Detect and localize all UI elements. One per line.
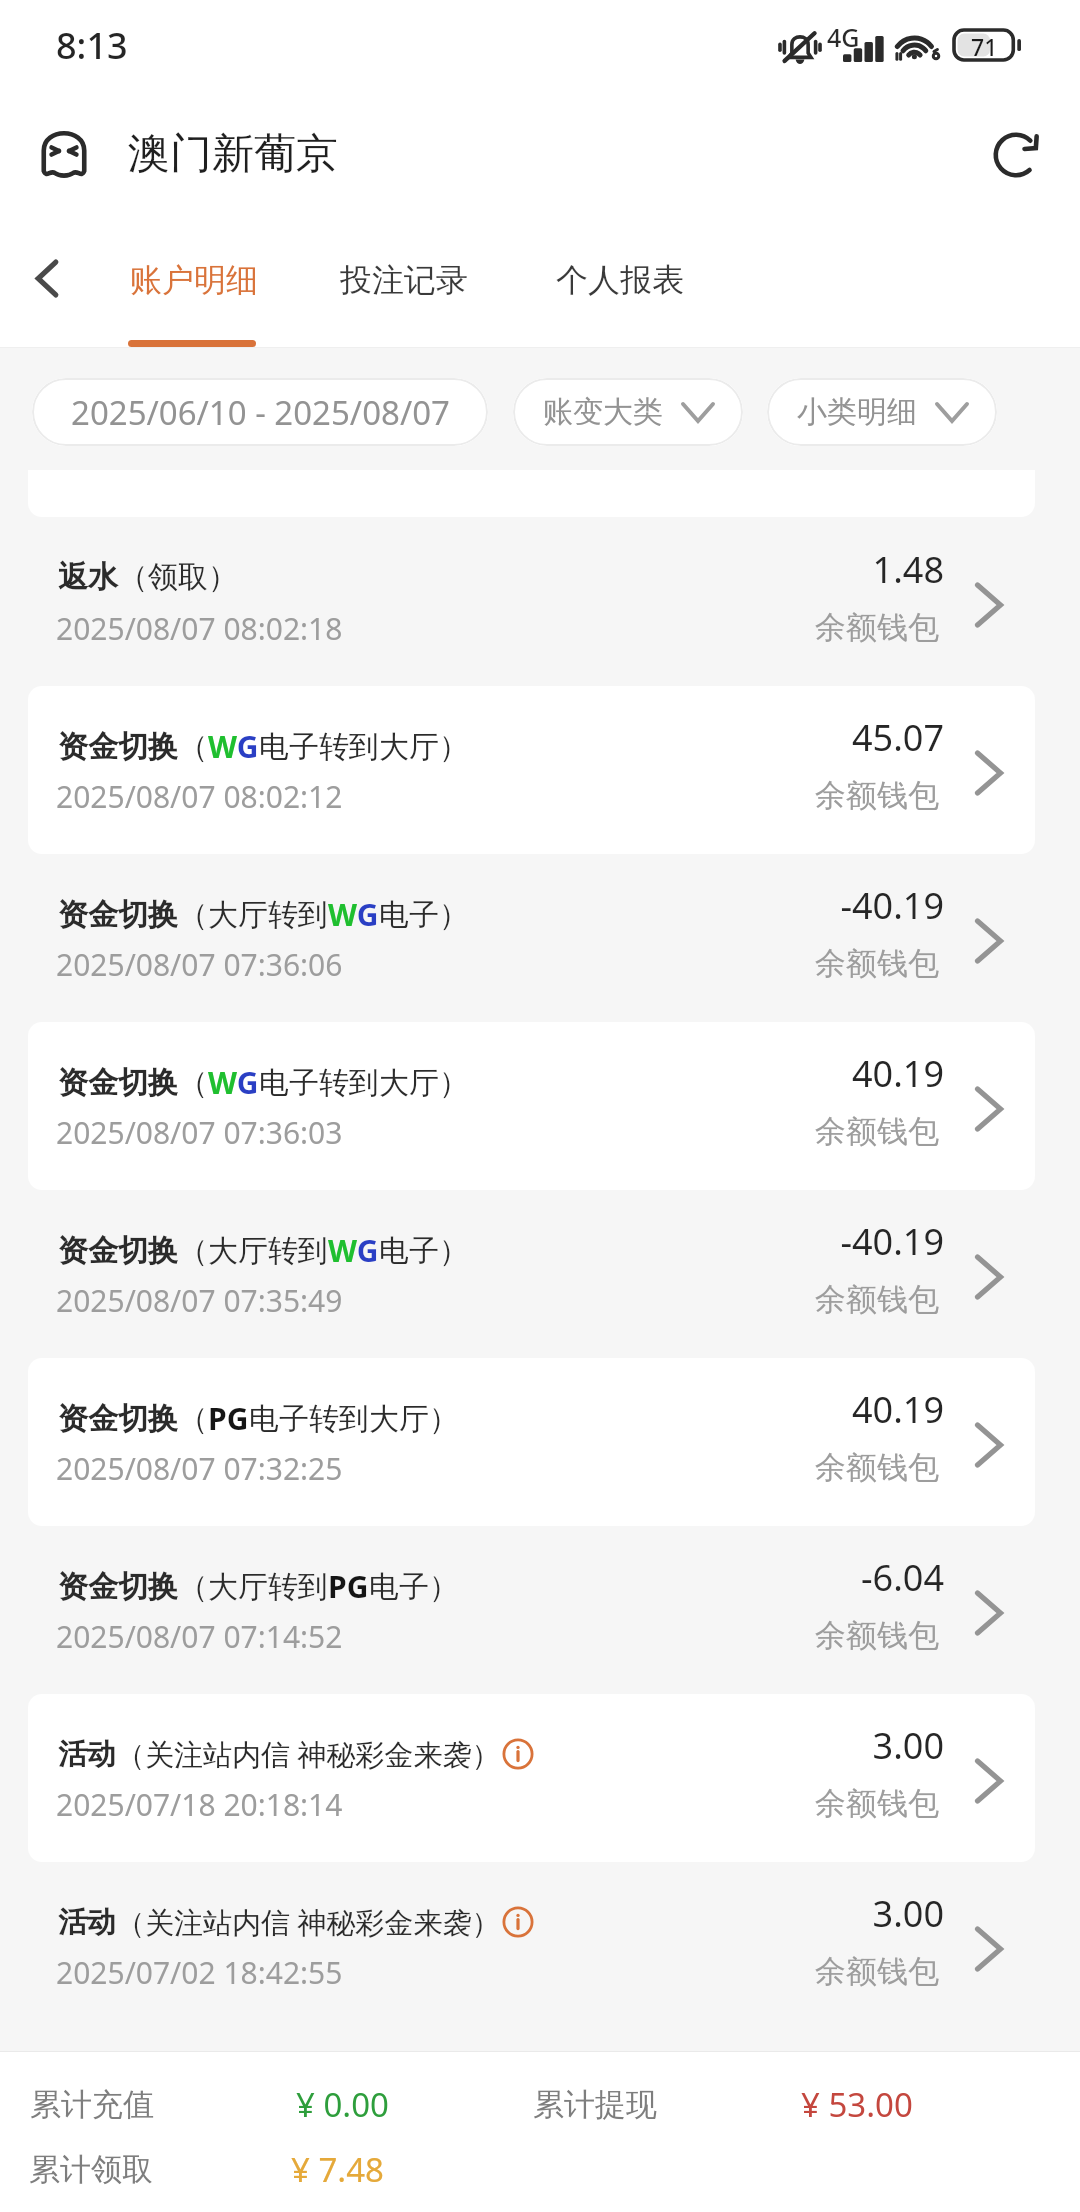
button[interactable]: 资金切换 xyxy=(0,1358,1080,1526)
staticText: WG xyxy=(208,726,259,767)
staticText: 2025/08/07 07:32:25 xyxy=(56,1448,343,1489)
staticText: （大厅转到 xyxy=(178,1568,328,1606)
staticText: 3.00 xyxy=(640,1721,944,1770)
staticText: 45.07 xyxy=(640,713,944,762)
staticText: 2025/08/07 07:36:03 xyxy=(56,1112,343,1153)
staticText: -40.19 xyxy=(640,1217,944,1266)
button[interactable]: 资金切换 xyxy=(0,854,1080,1022)
staticText: 余额钱包 xyxy=(640,1112,939,1151)
button[interactable]: 投注记录 xyxy=(318,240,490,324)
staticText: 资金切换 xyxy=(58,896,178,934)
staticText: 71 xyxy=(971,31,998,61)
staticText: （大厅转到 xyxy=(178,896,328,934)
staticText: 1.48 xyxy=(640,545,944,594)
staticText: 2025/08/07 08:02:18 xyxy=(56,608,343,649)
staticText: 2025/07/02 18:42:55 xyxy=(56,1952,343,1993)
staticText: 余额钱包 xyxy=(640,776,939,815)
staticText: 40.19 xyxy=(640,1049,944,1098)
staticText: 电子） xyxy=(379,1232,469,1270)
staticText: （大厅转到 xyxy=(178,1232,328,1270)
button[interactable]: 个人报表 xyxy=(534,240,706,324)
staticText: 2025/08/07 08:02:12 xyxy=(56,776,343,817)
button[interactable]: 资金切换 xyxy=(0,1190,1080,1358)
staticText: 电子） xyxy=(379,896,469,934)
staticText: 电子） xyxy=(369,1568,459,1606)
staticText: -40.19 xyxy=(640,881,944,930)
staticText: 2025/08/07 07:36:06 xyxy=(56,944,343,985)
staticText: ¥ 0.00 xyxy=(296,2082,389,2127)
staticText: ¥ 53.00 xyxy=(801,2082,913,2127)
staticText: 2025/07/18 20:18:14 xyxy=(56,1784,343,1825)
staticText: 8:13 xyxy=(56,21,128,70)
staticText: 小类明细 xyxy=(797,393,917,431)
staticText: 返水 xyxy=(58,558,118,596)
button[interactable]: 资金切换 xyxy=(0,686,1080,854)
button[interactable]: Back xyxy=(12,243,82,313)
staticText: -6.04 xyxy=(640,1553,944,1602)
staticText: 资金切换 xyxy=(58,1064,178,1102)
staticText: 余额钱包 xyxy=(640,1616,939,1655)
staticText: PG xyxy=(328,1566,369,1607)
staticText: 投注记录 xyxy=(340,260,468,300)
staticText: （ xyxy=(178,728,208,766)
staticText: 40.19 xyxy=(640,1385,944,1434)
button[interactable]: 2025/06/10 - 2025/08/07 xyxy=(32,378,488,446)
button[interactable]: 返水 xyxy=(0,518,1080,686)
staticText: WG xyxy=(328,894,379,935)
button[interactable]: 活动 xyxy=(0,1862,1080,2030)
staticText: 资金切换 xyxy=(58,728,178,766)
staticText: 3.00 xyxy=(640,1889,944,1938)
staticText: 余额钱包 xyxy=(640,608,939,647)
staticText: 余额钱包 xyxy=(640,1784,939,1823)
staticText: 资金切换 xyxy=(58,1568,178,1606)
button[interactable]: 活动 xyxy=(0,1694,1080,1862)
staticText: 资金切换 xyxy=(58,1232,178,1270)
staticText: 余额钱包 xyxy=(640,944,939,983)
staticText: 电子转到大厅） xyxy=(249,1400,459,1438)
staticText: WG xyxy=(328,1230,379,1271)
staticText: （关注站内信 神秘彩金来袭） xyxy=(116,1734,501,1774)
staticText: 累计领取 xyxy=(29,2150,153,2189)
staticText: 账变大类 xyxy=(543,393,663,431)
staticText: 澳门新葡京 xyxy=(128,128,338,181)
staticText: 2025/06/10 - 2025/08/07 xyxy=(71,390,450,435)
staticText: 4G xyxy=(827,20,860,54)
staticText: 余额钱包 xyxy=(640,1280,939,1319)
staticText: 2025/08/07 07:14:52 xyxy=(56,1616,343,1657)
staticText: 余额钱包 xyxy=(640,1952,939,1991)
staticText: 活动 xyxy=(58,1736,116,1773)
staticText: ¥ 7.48 xyxy=(291,2147,384,2192)
staticText: 累计提现 xyxy=(533,2085,657,2124)
staticText: 活动 xyxy=(58,1904,116,1941)
staticText: 累计充值 xyxy=(30,2085,154,2124)
staticText: 2025/08/07 07:35:49 xyxy=(56,1280,343,1321)
button[interactable]: Refresh xyxy=(994,132,1040,178)
staticText: （关注站内信 神秘彩金来袭） xyxy=(116,1902,501,1942)
staticText: PG xyxy=(208,1398,249,1439)
staticText: 个人报表 xyxy=(556,260,684,300)
staticText: （ xyxy=(178,1064,208,1102)
button[interactable]: 账户明细 xyxy=(108,240,280,324)
staticText: 电子转到大厅） xyxy=(259,1064,469,1102)
staticText: 电子转到大厅） xyxy=(259,728,469,766)
staticText: WG xyxy=(208,1062,259,1103)
staticText: 余额钱包 xyxy=(640,1448,939,1487)
button[interactable]: 账变大类 xyxy=(513,378,743,446)
staticText: 资金切换 xyxy=(58,1400,178,1438)
button[interactable]: 资金切换 xyxy=(0,1022,1080,1190)
button[interactable]: 资金切换 xyxy=(0,1526,1080,1694)
staticText: 账户明细 xyxy=(130,260,258,300)
button[interactable]: 小类明细 xyxy=(767,378,997,446)
staticText: （ xyxy=(178,1400,208,1438)
staticText: （领取） xyxy=(118,558,238,596)
